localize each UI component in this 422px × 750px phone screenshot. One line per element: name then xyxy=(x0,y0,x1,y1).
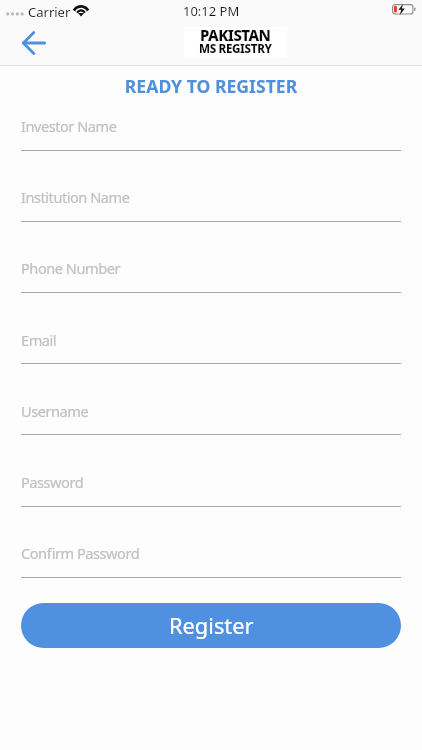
button[interactable]: Confirm Password xyxy=(0,543,422,578)
staticText: Phone Number xyxy=(21,258,120,278)
staticText: Password xyxy=(21,472,84,492)
staticText: Institution Name xyxy=(21,187,130,207)
button[interactable]: Investor Name xyxy=(0,116,422,151)
staticText: 10:12 PM xyxy=(183,2,240,20)
staticText: PAKISTAN xyxy=(200,25,271,45)
staticText: MS REGISTRY xyxy=(199,41,272,57)
staticText: Carrier xyxy=(28,3,71,21)
button[interactable]: Back xyxy=(12,22,56,64)
button[interactable]: Institution Name xyxy=(0,187,422,222)
staticText: Confirm Password xyxy=(21,543,140,563)
staticText: Register xyxy=(169,611,254,641)
button[interactable]: Email xyxy=(0,330,422,365)
button[interactable]: Pakistan MS Registry xyxy=(184,27,287,58)
staticText: Email xyxy=(21,330,57,350)
button[interactable]: Phone Number xyxy=(0,258,422,293)
staticText: Username xyxy=(21,401,89,421)
staticText: READY TO REGISTER xyxy=(0,74,422,98)
button[interactable]: Register xyxy=(21,603,401,648)
staticText: Investor Name xyxy=(21,116,117,136)
button[interactable]: Username xyxy=(0,401,422,436)
button[interactable]: Password xyxy=(0,472,422,507)
